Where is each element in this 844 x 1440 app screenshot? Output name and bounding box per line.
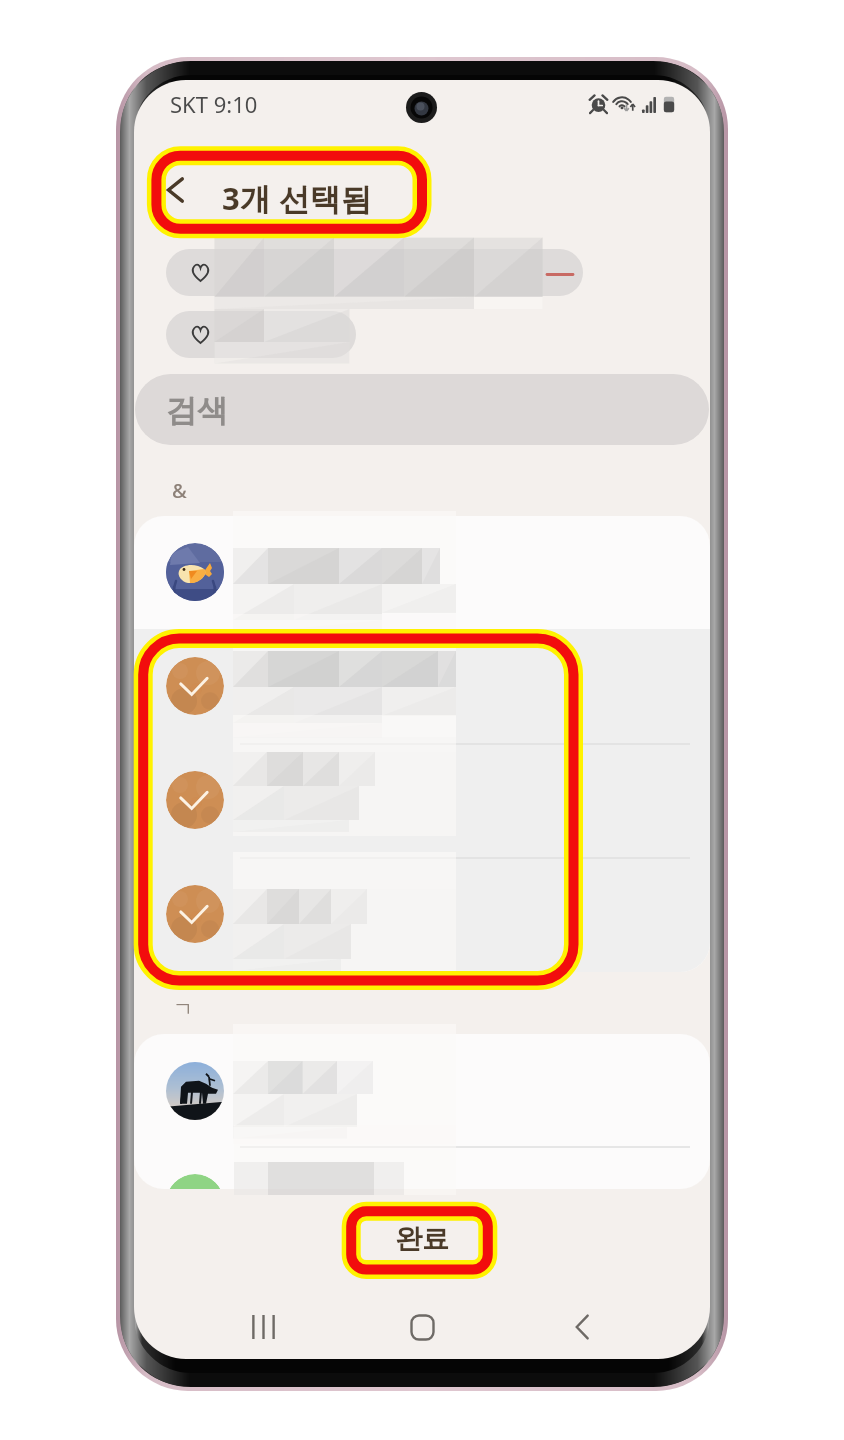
staticText: SKT 9:10	[170, 89, 258, 119]
button[interactable]: Recents	[203, 1295, 323, 1359]
button[interactable]: Back	[523, 1295, 643, 1359]
button[interactable]	[166, 249, 583, 296]
button[interactable]	[134, 744, 710, 858]
button[interactable]	[166, 311, 356, 358]
staticText: &	[172, 477, 187, 504]
button[interactable]	[134, 858, 710, 972]
staticText: 완료	[395, 1222, 449, 1256]
button[interactable]: 완료	[343, 1198, 501, 1280]
staticText: 검색	[166, 391, 228, 430]
button[interactable]: Back	[154, 168, 198, 212]
staticText: 3개 선택됨	[222, 177, 372, 219]
button[interactable]	[134, 1034, 710, 1147]
button[interactable]: 검색	[135, 374, 709, 445]
button[interactable]	[134, 516, 710, 629]
button[interactable]	[134, 629, 710, 744]
button[interactable]: Home	[362, 1295, 482, 1359]
staticText: ㄱ	[173, 997, 193, 1022]
button[interactable]	[134, 1147, 710, 1189]
button[interactable]: Back	[134, 136, 710, 240]
